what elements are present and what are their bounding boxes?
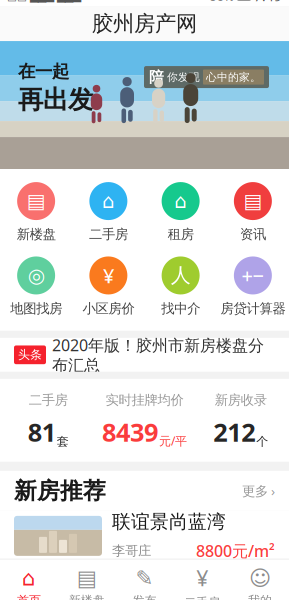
- staticText: 新楼盘: [17, 226, 56, 242]
- staticText: 联谊景尚蓝湾: [112, 510, 226, 533]
- staticText: ¥: [103, 262, 114, 289]
- staticText: ◎: [28, 264, 45, 287]
- button[interactable]: 头条: [0, 338, 289, 372]
- button[interactable]: ▤: [0, 182, 72, 242]
- staticText: 找中介: [161, 300, 200, 317]
- staticText: 资讯: [240, 226, 266, 242]
- button[interactable]: Banner: [0, 41, 289, 169]
- button[interactable]: ☺: [231, 566, 289, 600]
- staticText: ☺: [249, 566, 271, 590]
- button[interactable]: ¥: [173, 564, 231, 600]
- staticText: ▤: [243, 190, 262, 212]
- staticText: +−: [241, 262, 264, 289]
- staticText: 发布: [132, 593, 156, 600]
- staticText: 实时挂牌均价: [105, 392, 183, 408]
- staticText: 二手房: [89, 226, 128, 242]
- staticText: ⌂: [174, 190, 187, 212]
- staticText: 套: [57, 434, 69, 449]
- staticText: 58%: [210, 0, 234, 4]
- staticText: 更多 ›: [242, 482, 275, 500]
- staticText: ▂▄▆: [57, 0, 81, 2]
- staticText: ▤: [77, 566, 97, 590]
- button[interactable]: +−: [217, 256, 289, 317]
- staticText: ¥: [196, 564, 208, 592]
- staticText: 心中的家。: [206, 70, 261, 84]
- button[interactable]: 人: [144, 256, 217, 317]
- button[interactable]: ▤: [58, 566, 116, 600]
- staticText: 陪: [149, 68, 164, 86]
- staticText: 新房收录: [215, 392, 267, 408]
- staticText: ▤▤: [7, 0, 27, 2]
- button[interactable]: ¥: [72, 256, 144, 317]
- staticText: 81: [28, 415, 56, 449]
- staticText: 小区房价: [82, 300, 134, 317]
- staticText: ⌂: [22, 566, 36, 590]
- staticText: 8800元/m²: [196, 540, 275, 561]
- staticText: 你发现: [167, 70, 200, 84]
- staticText: ⌂: [102, 190, 115, 212]
- staticText: 房贷计算器: [220, 300, 285, 317]
- staticText: ▤: [27, 190, 46, 212]
- button[interactable]: 新房推荐: [0, 471, 289, 511]
- staticText: 租房: [168, 226, 194, 242]
- staticText: ▂▄▆: [30, 0, 54, 2]
- staticText: 首页: [17, 593, 41, 600]
- button[interactable]: 联谊景尚蓝湾: [0, 511, 289, 559]
- staticText: 二手房: [184, 595, 220, 600]
- staticText: 212: [213, 415, 255, 449]
- button[interactable]: ⌂: [72, 182, 144, 242]
- staticText: 元/平: [159, 433, 187, 449]
- button[interactable]: ✎: [116, 566, 173, 600]
- staticText: 7:49: [254, 0, 282, 5]
- staticText: 个: [256, 434, 268, 449]
- staticText: 人: [171, 263, 191, 288]
- staticText: 胶州房产网: [92, 10, 197, 37]
- staticText: 在一起: [18, 61, 69, 82]
- staticText: 地图找房: [10, 300, 62, 317]
- staticText: 新楼盘: [69, 593, 105, 600]
- staticText: 再出发: [18, 84, 93, 115]
- staticText: 头条: [18, 347, 42, 362]
- staticText: 新房推荐: [14, 477, 106, 505]
- staticText: ✎: [135, 566, 153, 590]
- button[interactable]: ▤: [217, 182, 289, 242]
- button[interactable]: ⌂: [0, 566, 58, 600]
- staticText: 2020年版！胶州市新房楼盘分布汇总: [52, 334, 264, 375]
- staticText: 8439: [102, 415, 158, 449]
- staticText: 李哥庄: [112, 543, 151, 559]
- staticText: 二手房: [29, 392, 68, 408]
- button[interactable]: ◎: [0, 256, 72, 317]
- button[interactable]: ⌂: [144, 182, 217, 242]
- staticText: 我的: [248, 593, 272, 600]
